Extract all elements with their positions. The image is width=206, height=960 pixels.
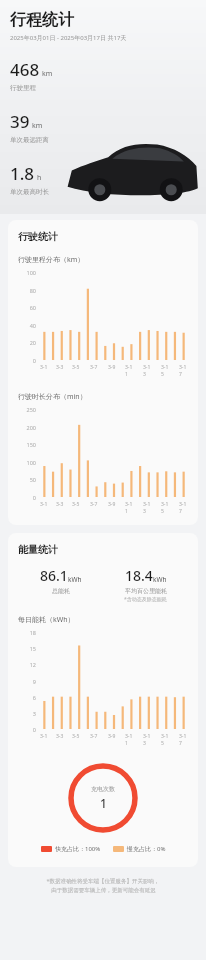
staticText: 3-17 <box>179 733 188 747</box>
staticText: 充电次数 <box>91 785 115 793</box>
staticText: 3-9 <box>108 733 116 740</box>
staticText: 单次最高时长 <box>10 188 49 196</box>
staticText: 100 <box>26 269 36 276</box>
staticText: 80 <box>29 287 36 294</box>
staticText: 3 <box>32 710 36 717</box>
staticText: 行程统计 <box>10 10 74 30</box>
staticText: 0 <box>32 494 36 501</box>
staticText: km <box>42 69 53 79</box>
staticText: 3-1 <box>40 501 48 508</box>
staticText: 3-13 <box>143 364 152 378</box>
staticText: 3-3 <box>56 733 64 740</box>
staticText: 100 <box>26 459 36 466</box>
staticText: 3-5 <box>72 733 80 740</box>
staticText: 3-5 <box>72 501 80 508</box>
staticText: 60 <box>29 304 36 311</box>
staticText: 3-17 <box>179 364 188 378</box>
staticText: 468 <box>10 58 40 81</box>
staticText: 50 <box>29 476 36 483</box>
staticText: 12 <box>29 661 36 668</box>
staticText: 3-11 <box>125 733 134 747</box>
staticText: 86.1 <box>40 566 68 585</box>
staticText: 3-7 <box>90 364 98 371</box>
staticText: 总能耗 <box>52 587 70 595</box>
staticText: kWh <box>68 575 82 584</box>
staticText: h <box>37 173 42 183</box>
staticText: 3-17 <box>179 501 188 515</box>
staticText: 2025年03月01日 - 2025年03月17日 共17天 <box>10 34 127 42</box>
staticText: 3-7 <box>90 733 98 740</box>
staticText: 3-3 <box>56 501 64 508</box>
staticText: 3-11 <box>125 501 134 515</box>
staticText: 0 <box>32 357 36 364</box>
staticText: 3-1 <box>40 733 48 740</box>
staticText: 15 <box>29 645 36 652</box>
staticText: 平均百公里能耗 <box>125 587 167 595</box>
staticText: 20 <box>29 339 36 346</box>
staticText: 250 <box>26 406 36 413</box>
staticText: *数据准确性将受车端【位置服务】开关影响， <box>46 877 160 885</box>
staticText: 1 <box>100 795 107 811</box>
staticText: 18.4 <box>125 566 153 585</box>
staticText: 能量统计 <box>18 543 58 556</box>
staticText: 3-7 <box>90 501 98 508</box>
staticText: 200 <box>26 424 36 431</box>
staticText: 3-9 <box>108 364 116 371</box>
staticText: 行驶统计 <box>18 230 58 243</box>
staticText: 18 <box>29 629 36 636</box>
staticText: *含动态及静态能耗 <box>124 596 167 603</box>
staticText: 3-3 <box>56 364 64 371</box>
staticText: 150 <box>26 441 36 448</box>
staticText: 3-13 <box>143 501 152 515</box>
staticText: 行驶时长分布（min） <box>18 392 87 402</box>
staticText: 单次最远距离 <box>10 136 49 144</box>
staticText: 每日能耗（kWh） <box>18 615 75 625</box>
staticText: 3-5 <box>72 364 80 371</box>
staticText: 39 <box>10 110 30 133</box>
staticText: 3-11 <box>125 364 134 378</box>
staticText: 6 <box>32 694 36 701</box>
staticText: 3-13 <box>143 733 152 747</box>
staticText: 0 <box>32 726 36 733</box>
button[interactable]: 充电次数 <box>68 763 138 833</box>
staticText: 3-9 <box>108 501 116 508</box>
staticText: 40 <box>29 322 36 329</box>
staticText: 快充占比：100% <box>55 845 101 853</box>
staticText: 行驶里程分布（km） <box>18 255 85 265</box>
staticText: 1.8 <box>10 162 35 185</box>
staticText: 9 <box>32 678 36 685</box>
staticText: kWh <box>153 575 167 584</box>
staticText: 3-15 <box>161 733 170 747</box>
staticText: km <box>32 121 43 131</box>
staticText: 3-15 <box>161 364 170 378</box>
staticText: 3-15 <box>161 501 170 515</box>
staticText: 慢充占比：0% <box>127 845 166 853</box>
staticText: 行驶里程 <box>10 84 36 92</box>
staticText: 由于数据需要车辆上传，更新可能会有延迟 <box>51 887 156 894</box>
staticText: 3-1 <box>40 364 48 371</box>
